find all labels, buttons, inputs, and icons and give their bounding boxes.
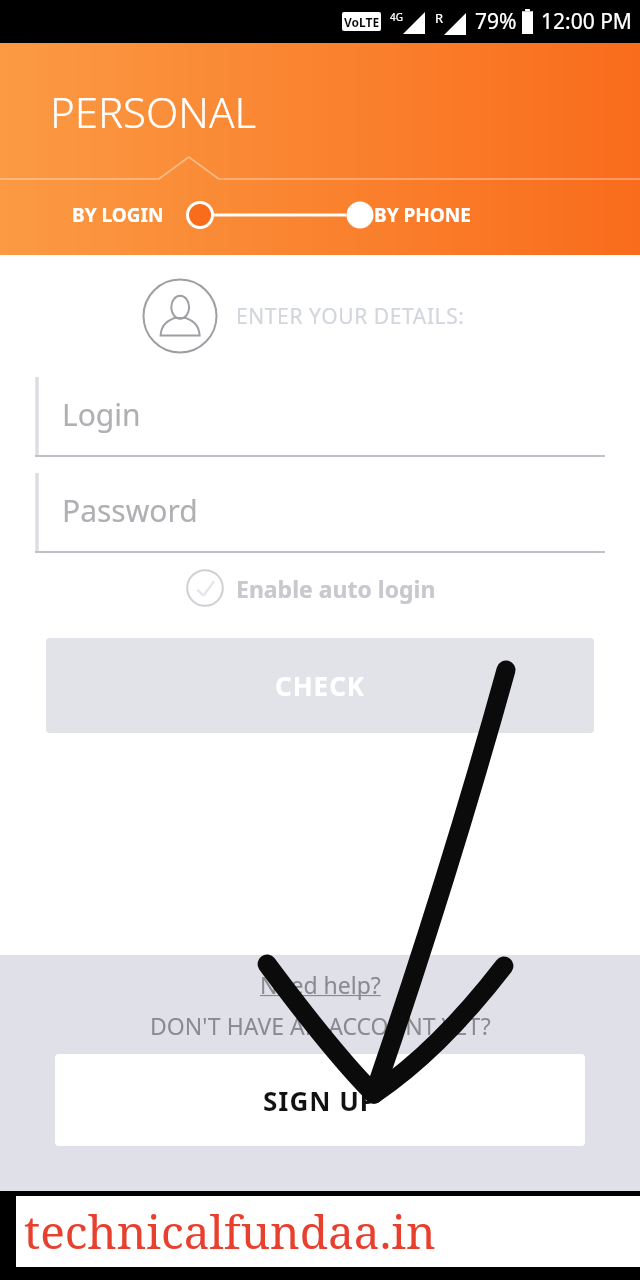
staticText: R [435,9,444,27]
staticText: BY LOGIN [72,202,164,228]
staticText: technicalfundaa.in [24,1200,436,1263]
button[interactable]: Password [0,471,640,555]
staticText: ENTER YOUR DETAILS: [236,302,465,331]
staticText: DON'T HAVE AN ACCOUNT YET? [150,1010,491,1041]
staticText: Password [62,490,198,531]
button[interactable]: BY LOGIN [72,202,164,228]
staticText: 4G [390,10,403,24]
staticText: 79% [475,7,517,36]
staticText: 12:00 PM [541,7,632,36]
button[interactable]: CHECK [46,638,594,733]
staticText: BY PHONE [374,202,471,228]
button[interactable]: BY PHONE [374,202,471,228]
staticText: Login [62,394,141,435]
button[interactable]: Enable auto login [186,569,640,607]
staticText: VoLTE [344,14,380,30]
button[interactable]: Login [0,375,640,459]
staticText: Enable auto login [236,573,436,604]
staticText: PERSONAL [50,83,257,140]
button[interactable]: SIGN UP [55,1054,585,1146]
staticText: Need help? [260,969,381,1000]
staticText: SIGN UP [263,1083,377,1118]
button[interactable]: Toggle login method [186,198,374,232]
button[interactable]: Need help? [260,969,381,1000]
staticText: CHECK [275,668,366,703]
